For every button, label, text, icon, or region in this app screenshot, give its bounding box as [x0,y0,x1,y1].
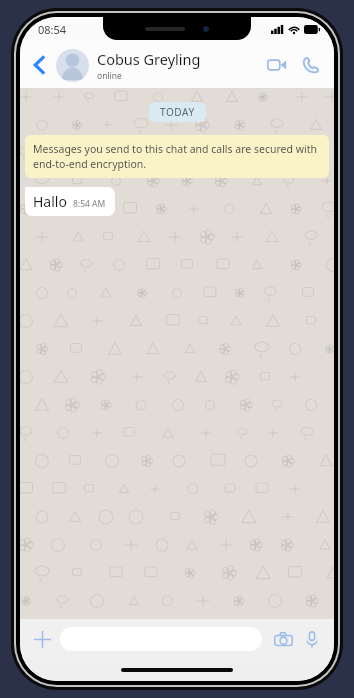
button[interactable]: Back [25,50,55,80]
staticText: 08:54 [38,22,67,37]
button[interactable]: Camera [270,626,296,652]
button[interactable]: Cobus Greyling [97,49,262,82]
button[interactable]: Attach [29,626,55,652]
staticText: 8:54 AM [73,198,106,210]
button[interactable]: Voice message [299,626,325,652]
button[interactable]: Contact photo [56,49,89,82]
staticText: TODAY [160,105,195,119]
button[interactable]: Voice call [295,50,325,80]
button[interactable]: Hallo [25,187,115,216]
button[interactable]: Messages you send to this chat and calls… [25,135,329,178]
staticText: Messages you send to this chat and calls… [33,142,321,171]
staticText: online [97,70,122,82]
button[interactable]: Video call [262,50,292,80]
staticText: Hallo [33,192,67,211]
staticText: Cobus Greyling [97,49,201,69]
